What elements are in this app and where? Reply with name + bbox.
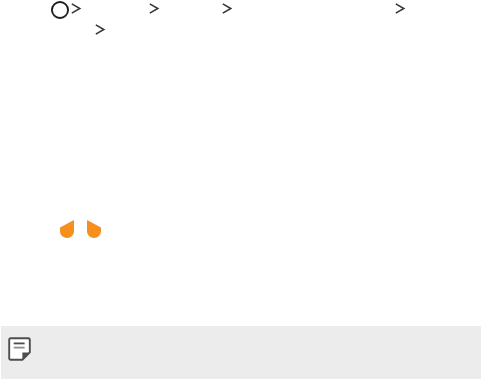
- button[interactable]: Next crumb 5: [94, 24, 104, 35]
- button[interactable]: Next crumb 2: [148, 3, 158, 14]
- button[interactable]: Next crumb 1: [70, 3, 80, 14]
- button[interactable]: Home: [51, 1, 69, 19]
- button[interactable]: Notes: [8, 337, 31, 361]
- button[interactable]: Next crumb 4: [394, 3, 404, 14]
- button[interactable]: Next crumb 3: [221, 3, 231, 14]
